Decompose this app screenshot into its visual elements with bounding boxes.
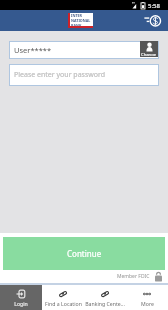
staticText: Banking Cente... [85, 300, 125, 307]
staticText: Find a Location [45, 300, 82, 307]
staticText: INTER [71, 13, 83, 18]
staticText: NATIONAL [71, 18, 91, 23]
button[interactable]: Find a Location [42, 285, 84, 310]
staticText: Login [14, 300, 28, 307]
button[interactable]: Login [0, 285, 42, 310]
staticText: More [141, 300, 154, 307]
button[interactable]: Pay [144, 11, 163, 30]
button[interactable]: Change [140, 41, 158, 57]
staticText: BANK [71, 23, 82, 26]
staticText: Change [141, 52, 157, 56]
staticText: User***** [14, 45, 52, 55]
staticText: Please enter your password [14, 70, 106, 80]
button[interactable]: More [126, 285, 168, 310]
button[interactable]: Continue [3, 237, 165, 270]
button[interactable]: Please enter your password [14, 64, 159, 86]
staticText: Continue [67, 248, 102, 259]
staticText: Member FDIC [117, 273, 150, 280]
button[interactable]: User***** [9, 41, 159, 59]
button[interactable]: Banking Cente... [84, 285, 126, 310]
staticText: 5:58 [148, 2, 160, 10]
